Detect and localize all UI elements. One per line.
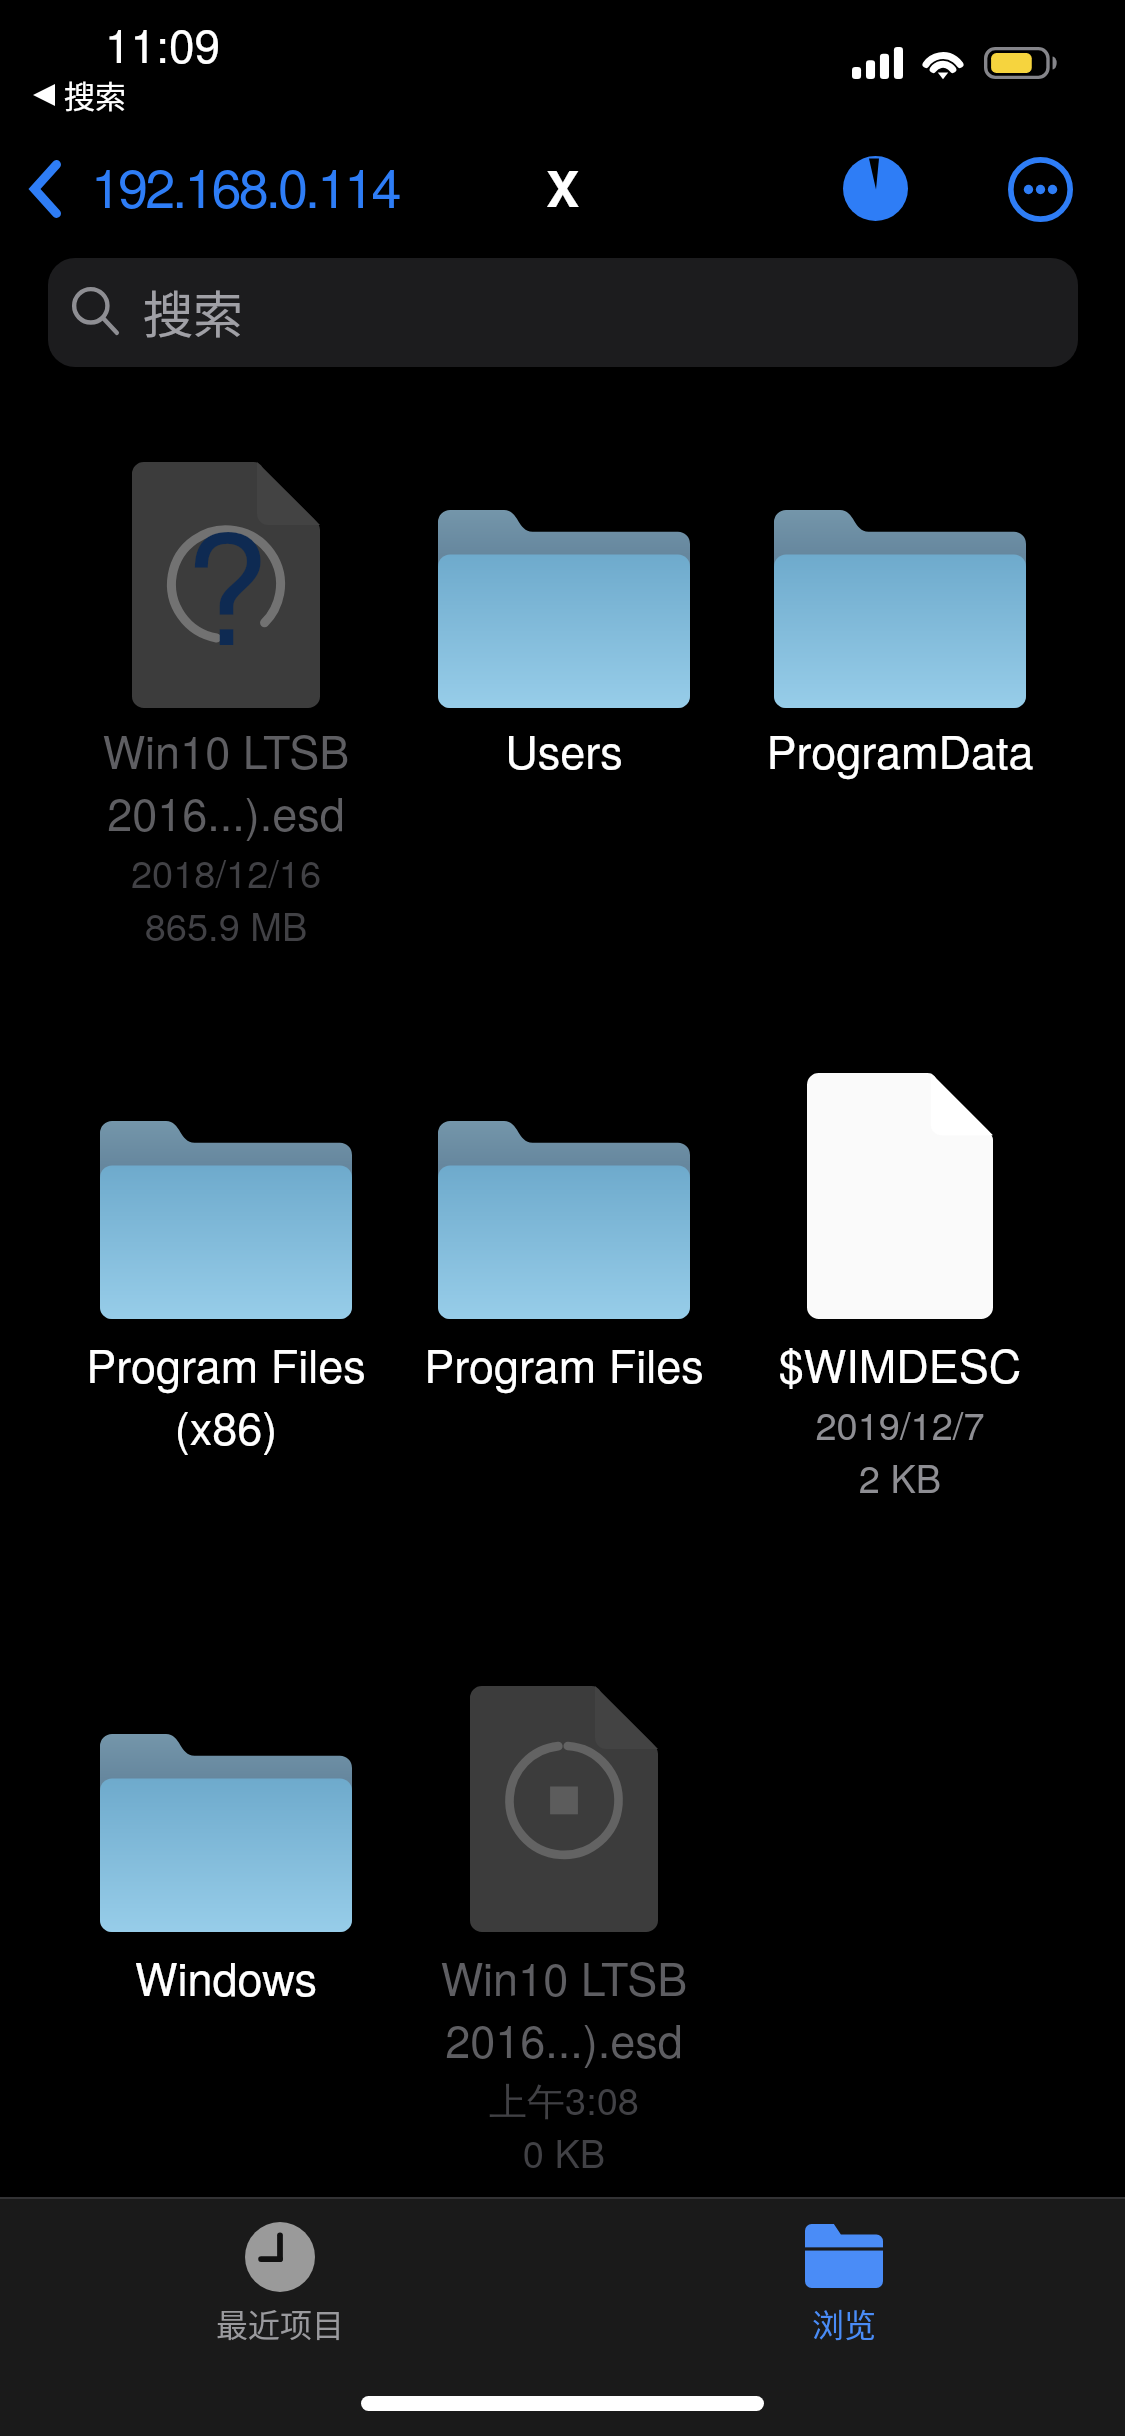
staticText: 2016...).esd <box>396 2006 732 2070</box>
staticText: 2 KB <box>732 1449 1068 1503</box>
button[interactable]: Win10 LTSB <box>396 1670 732 2188</box>
button[interactable]: Search <box>48 258 1078 367</box>
staticText: 2019/12/7 <box>732 1396 1068 1450</box>
staticText: Program Files <box>396 1331 732 1395</box>
button[interactable]: Back to 192.168.0.114 parent folder <box>21 136 407 233</box>
staticText: Windows <box>58 1944 394 2008</box>
staticText: 2018/12/16 <box>58 844 394 898</box>
staticText: Users <box>396 717 732 781</box>
button[interactable]: Program Files <box>58 1057 394 1575</box>
staticText: ? <box>184 471 269 689</box>
staticText: 搜索 <box>64 72 126 117</box>
staticText: 865.9 MB <box>58 897 394 951</box>
button[interactable]: Program Files <box>396 1057 732 1575</box>
staticText: (x86) <box>58 1393 394 1457</box>
button[interactable]: ? <box>58 446 394 961</box>
staticText: Program Files <box>58 1331 394 1395</box>
staticText: 上午3:08 <box>396 2071 732 2126</box>
button[interactable]: 浏览 <box>724 2199 964 2349</box>
button[interactable]: Windows <box>58 1670 394 2188</box>
staticText: 浏览 <box>724 2300 964 2346</box>
button[interactable]: ProgramData <box>732 446 1068 961</box>
staticText: 11:09 <box>105 10 221 76</box>
staticText: 2016...).esd <box>58 779 394 843</box>
staticText: 192.168.0.114 <box>91 146 399 223</box>
staticText: X <box>546 151 580 223</box>
button[interactable]: $WIMDESC <box>732 1057 1068 1575</box>
button[interactable]: Users <box>396 446 732 961</box>
staticText: Win10 LTSB <box>58 717 394 781</box>
button[interactable]: 最近项目 <box>160 2199 400 2349</box>
button[interactable]: Transfer progress <box>815 128 936 249</box>
staticText: $WIMDESC <box>732 1331 1068 1395</box>
staticText: ProgramData <box>732 717 1068 781</box>
staticText: Win10 LTSB <box>396 1944 732 2008</box>
staticText: 0 KB <box>396 2124 732 2178</box>
staticText: 搜索 <box>143 275 243 347</box>
staticText: 最近项目 <box>160 2300 400 2346</box>
button[interactable]: More options <box>980 129 1101 250</box>
